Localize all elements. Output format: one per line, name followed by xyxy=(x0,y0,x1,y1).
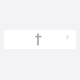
button[interactable] xyxy=(4,30,76,49)
